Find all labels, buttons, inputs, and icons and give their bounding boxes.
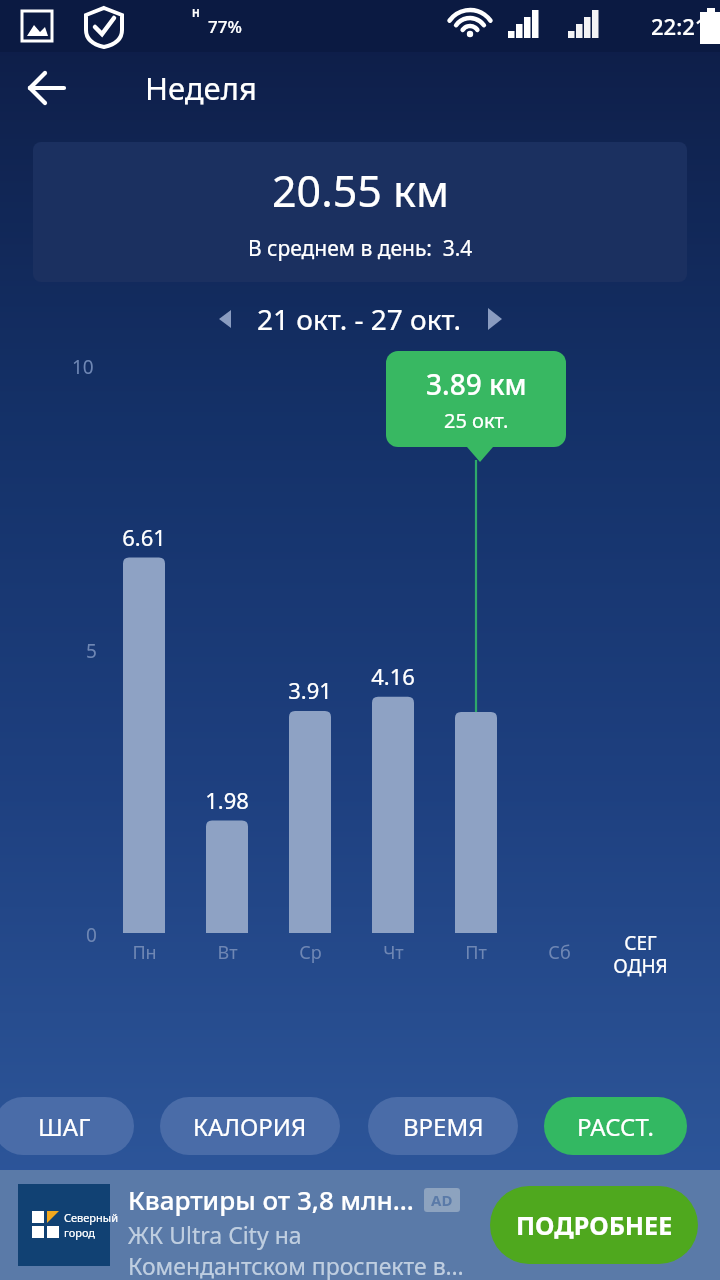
staticText: 10 [72,354,94,380]
button[interactable]: 3.89 км [386,351,566,447]
staticText: 25 окт. [444,407,509,434]
staticText: 3.91 [288,675,332,705]
button[interactable]: ВРЕМЯ [368,1097,518,1155]
staticText: ПОДРОБНЕЕ [516,1208,673,1242]
staticText: Пт [465,940,487,965]
staticText: ВРЕМЯ [403,1110,484,1143]
button[interactable]: Previous week [209,302,243,336]
button[interactable]: РАССТ. [544,1097,687,1155]
staticText: 20.55 км [272,161,449,220]
button[interactable]: ШАГ [0,1097,134,1155]
button[interactable]: КАЛОРИЯ [160,1097,340,1155]
button[interactable]: Северный [0,1170,720,1280]
staticText: 5 [86,638,97,664]
staticText: H [192,6,200,20]
staticText: Комендантском проспекте в… [128,1250,464,1280]
staticText: Чт [383,940,404,965]
staticText: AD [431,1190,453,1210]
staticText: Вт [217,940,238,965]
staticText: город [64,1225,96,1240]
button[interactable]: Back [22,64,70,112]
staticText: 21 окт. - 27 окт. [257,300,462,338]
staticText: ЖК Ultra City на [128,1219,302,1250]
staticText: РАССТ. [577,1110,654,1143]
button[interactable]: 20.55 км [33,142,687,282]
staticText: 22:21 [651,11,708,41]
staticText: В среднем в день: 3.4 [248,234,473,263]
staticText: Неделя [145,67,257,109]
staticText: КАЛОРИЯ [193,1110,307,1143]
staticText: 0 [86,922,97,948]
staticText: 1.98 [205,785,249,815]
staticText: 77% [208,15,242,38]
staticText: Сб [548,940,571,965]
staticText: Квартиры от 3,8 млн… [128,1182,414,1217]
staticText: Северный [64,1210,118,1225]
staticText: Ср [299,940,322,965]
button[interactable]: ПОДРОБНЕЕ [490,1186,698,1264]
staticText: СЕГ ОДНЯ [613,930,668,979]
staticText: ШАГ [38,1110,91,1143]
staticText: 6.61 [122,522,166,552]
staticText: 3.89 км [426,365,527,403]
staticText: Пн [132,940,157,965]
button[interactable]: Next week [478,302,512,336]
staticText: 4.16 [371,661,415,691]
